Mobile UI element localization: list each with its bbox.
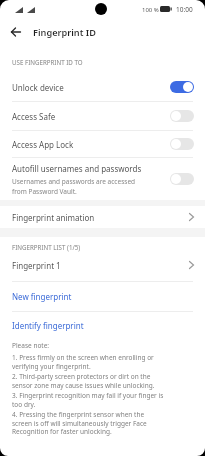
staticText: 10:00 [176, 5, 193, 14]
staticText: Identify fingerprint [12, 320, 84, 331]
staticText: USE FINGERPRINT ID TO [12, 58, 83, 66]
staticText: 100 % [142, 6, 159, 14]
staticText: New fingerprint [12, 291, 72, 302]
button[interactable] [170, 110, 194, 122]
button[interactable] [170, 173, 194, 185]
button[interactable]: Identify fingerprint [0, 312, 205, 339]
button[interactable]: Autofill usernames and passwords [0, 158, 205, 200]
button[interactable] [170, 138, 194, 150]
staticText: 4. Pressing the fingerprint sensor when … [12, 410, 147, 435]
button[interactable]: Unlock device [0, 73, 205, 101]
button[interactable] [170, 81, 194, 93]
staticText: Autofill usernames and passwords [12, 163, 142, 174]
staticText: FINGERPRINT LIST (1/5) [12, 243, 81, 251]
button[interactable]: Access App Lock [0, 131, 205, 157]
button[interactable]: New fingerprint [0, 282, 205, 311]
button[interactable] [8, 24, 24, 40]
staticText: Fingerprint animation [12, 212, 95, 223]
staticText: 1. Press firmly on the screen when enrol… [12, 353, 154, 370]
button[interactable]: Access Safe [0, 102, 205, 130]
staticText: Usernames and passwords are accessed fro… [12, 177, 136, 196]
staticText: Fingerprint ID [33, 26, 96, 39]
staticText: Please note: [12, 341, 50, 350]
staticText: Access Safe [12, 111, 56, 122]
staticText: Unlock device [12, 82, 64, 93]
staticText: 3. Fingerprint recognition may fail if y… [12, 391, 164, 408]
staticText: Fingerprint 1 [12, 260, 61, 271]
button[interactable]: Fingerprint animation [0, 206, 205, 228]
staticText: Access App Lock [12, 139, 74, 150]
staticText: 2. Third-party screen protectors or dirt… [12, 372, 155, 389]
button[interactable]: Fingerprint 1 [0, 255, 205, 275]
